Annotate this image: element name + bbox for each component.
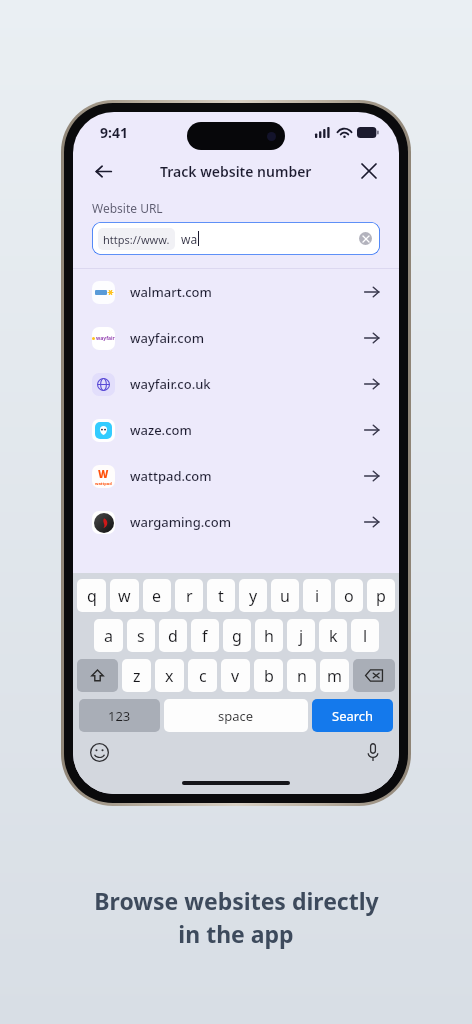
button[interactable]: i [303, 579, 331, 612]
staticText: https://www. [103, 232, 170, 247]
staticText: s [137, 625, 145, 647]
button[interactable]: w [110, 579, 139, 612]
staticText: l [363, 625, 368, 647]
button[interactable]: q [77, 579, 106, 612]
staticText: j [299, 625, 304, 647]
staticText: d [168, 625, 178, 647]
staticText: 9:41 [100, 123, 128, 142]
button[interactable]: s [127, 619, 155, 652]
button[interactable]: x [155, 659, 184, 692]
button[interactable]: b [254, 659, 283, 692]
staticText: x [165, 665, 174, 687]
staticText: Track website number [160, 162, 312, 181]
staticText: q [87, 585, 97, 607]
staticText: v [231, 665, 240, 687]
staticText: Website URL [92, 200, 163, 216]
staticText: wayfair.co.uk [130, 375, 211, 393]
button[interactable]: a [94, 619, 123, 652]
button[interactable]: t [207, 579, 235, 612]
button[interactable]: k [319, 619, 347, 652]
button[interactable]: h [255, 619, 283, 652]
button[interactable]: f [191, 619, 219, 652]
button[interactable]: space [164, 699, 308, 732]
button[interactable]: j [287, 619, 315, 652]
button[interactable]: W [73, 453, 399, 499]
button[interactable]: p [367, 579, 395, 612]
staticText: m [327, 665, 342, 687]
button[interactable]: 123 [79, 699, 160, 732]
staticText: wayfair.com [130, 329, 204, 347]
staticText: i [315, 585, 320, 607]
staticText: p [376, 585, 386, 607]
button[interactable]: Close [351, 153, 387, 189]
button[interactable]: Search [312, 699, 393, 732]
button[interactable]: y [239, 579, 267, 612]
staticText: w [118, 585, 131, 607]
staticText: f [202, 625, 208, 647]
staticText: in the app [178, 918, 294, 949]
staticText: wattpad [95, 481, 112, 486]
staticText: h [264, 625, 274, 647]
staticText: r [186, 585, 193, 607]
button[interactable]: m [320, 659, 349, 692]
staticText: o [344, 585, 354, 607]
button[interactable]: Clear text [359, 232, 372, 245]
button[interactable]: waze.com [73, 407, 399, 453]
button[interactable]: Voice input [359, 738, 387, 766]
staticText: n [297, 665, 307, 687]
button[interactable]: wargaming.com [73, 499, 399, 545]
staticText: wayfair [96, 335, 115, 342]
staticText: g [232, 625, 242, 647]
button[interactable]: c [188, 659, 217, 692]
button[interactable]: d [159, 619, 187, 652]
staticText: k [329, 625, 338, 647]
button[interactable]: e [143, 579, 171, 612]
staticText: c [199, 665, 207, 687]
button[interactable]: Backspace [353, 659, 395, 692]
staticText: space [218, 707, 254, 725]
staticText: z [133, 665, 141, 687]
staticText: b [264, 665, 274, 687]
staticText: Browse websites directly [94, 885, 379, 916]
staticText: t [218, 585, 224, 607]
button[interactable]: wayfair.co.uk [73, 361, 399, 407]
button[interactable]: r [175, 579, 203, 612]
button[interactable]: wayfair [73, 315, 399, 361]
staticText: 123 [108, 707, 131, 725]
staticText: wa [181, 231, 198, 247]
button[interactable]: z [122, 659, 151, 692]
staticText: a [104, 625, 113, 647]
staticText: e [152, 585, 162, 607]
staticText: Search [332, 707, 374, 725]
staticText: y [249, 585, 258, 607]
button[interactable]: u [271, 579, 299, 612]
staticText: W [98, 467, 109, 481]
button[interactable]: https://www. [92, 222, 380, 255]
staticText: u [280, 585, 290, 607]
button[interactable]: g [223, 619, 251, 652]
button[interactable]: Emoji [85, 738, 113, 766]
button[interactable]: Shift [77, 659, 118, 692]
button[interactable]: l [351, 619, 379, 652]
staticText: wattpad.com [130, 467, 212, 485]
button[interactable]: v [221, 659, 250, 692]
staticText: walmart.com [130, 283, 212, 301]
button[interactable]: o [335, 579, 363, 612]
button[interactable]: n [287, 659, 316, 692]
staticText: waze.com [130, 421, 192, 439]
button[interactable]: Back [85, 153, 121, 189]
staticText: wargaming.com [130, 513, 231, 531]
button[interactable]: walmart.com [73, 269, 399, 315]
